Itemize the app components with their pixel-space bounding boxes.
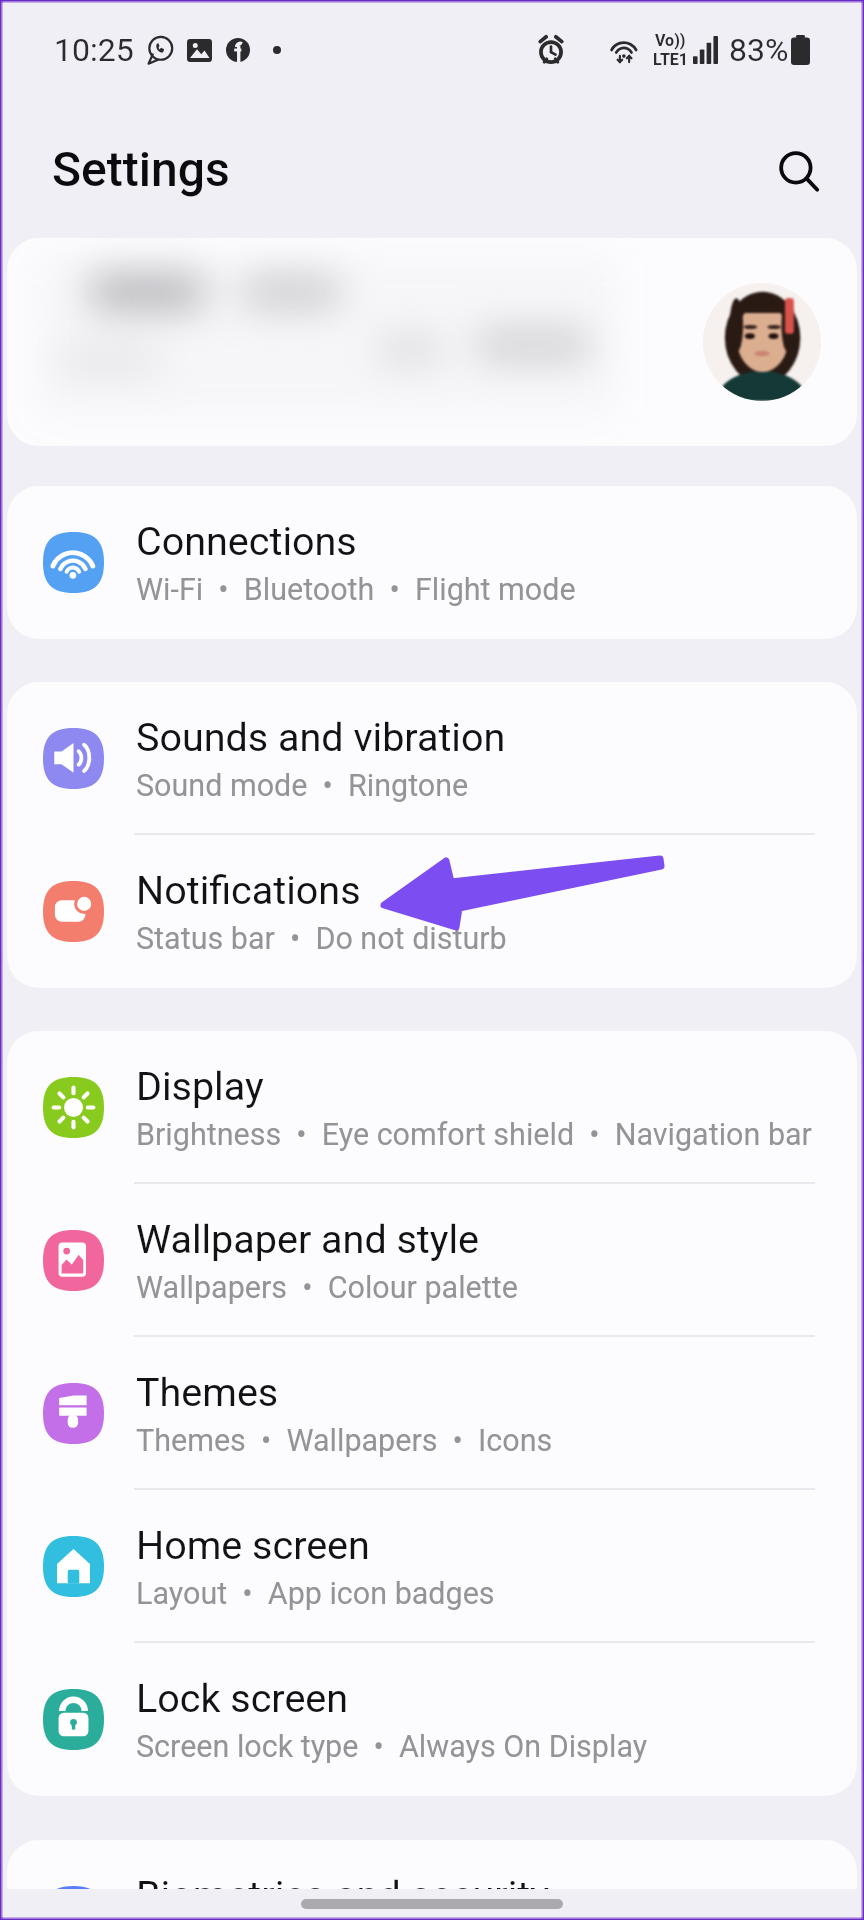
staticText: Display [136, 1063, 264, 1109]
button[interactable]: Lock screen [7, 1643, 857, 1796]
button[interactable]: Home screen [7, 1490, 857, 1643]
staticText: Themes • Wallpapers • Icons [136, 1423, 553, 1459]
button[interactable]: Sounds and vibration [7, 682, 857, 835]
staticText: Layout • App icon badges [136, 1576, 495, 1612]
staticText: Screen lock type • Always On Display [136, 1729, 648, 1765]
staticText: Themes [136, 1369, 279, 1415]
button[interactable]: Search [762, 134, 838, 210]
staticText: Sound mode • Ringtone [136, 768, 469, 804]
staticText: Brightness • Eye comfort shield • Naviga… [136, 1117, 812, 1153]
staticText: Wallpaper and style [136, 1216, 480, 1262]
staticText: Wi-Fi • Bluetooth • Flight mode [136, 572, 576, 608]
staticText: 83% [729, 31, 789, 69]
staticText: Lock screen [136, 1675, 349, 1721]
staticText: Wallpapers • Colour palette [136, 1270, 518, 1306]
staticText: Home screen [136, 1522, 370, 1568]
staticText: Biometrics and security [136, 1872, 549, 1889]
staticText: Connections [136, 518, 357, 564]
button[interactable]: Display [7, 1031, 857, 1184]
staticText: Vo)) [655, 31, 686, 50]
staticText: Sounds and vibration [136, 714, 506, 760]
staticText: Notifications [136, 867, 361, 913]
button[interactable]: Connections [7, 486, 857, 639]
staticText: 10:25 [54, 31, 134, 69]
button[interactable]: Biometrics and security [7, 1840, 857, 1889]
button[interactable]: Wallpaper and style [7, 1184, 857, 1337]
staticText: Status bar • Do not disturb [136, 921, 507, 957]
button[interactable]: Notifications [7, 835, 857, 988]
staticText: LTE1 [653, 50, 688, 69]
button[interactable]: Themes [7, 1337, 857, 1490]
staticText: Settings [52, 141, 230, 197]
button[interactable] [7, 238, 857, 446]
